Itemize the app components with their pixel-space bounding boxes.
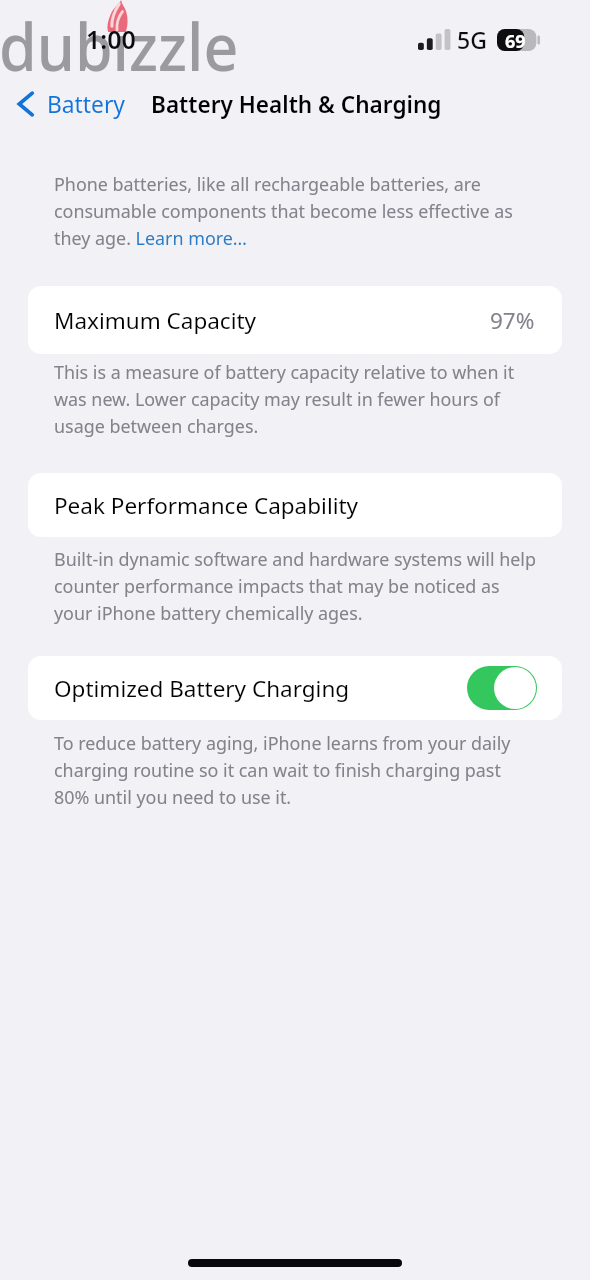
staticText: Battery: [47, 89, 125, 120]
staticText: This is a measure of battery capacity re…: [54, 360, 536, 438]
staticText: 69: [505, 29, 526, 51]
staticText: 5G: [457, 24, 487, 55]
button[interactable]: Optimized Battery Charging: [28, 656, 562, 720]
button[interactable]: Back to Battery: [14, 86, 125, 122]
staticText: 97%: [490, 305, 535, 336]
staticText: Built-in dynamic software and hardware s…: [54, 547, 536, 625]
staticText: Battery Health & Charging: [151, 89, 442, 120]
staticText: Peak Performance Capability: [54, 490, 359, 521]
staticText: To reduce battery aging, iPhone learns f…: [54, 731, 536, 809]
staticText: 1:00: [86, 22, 136, 56]
staticText: Phone batteries, like all rechargeable b…: [54, 172, 536, 250]
staticText: Maximum Capacity: [54, 305, 257, 336]
button[interactable]: Optimized Battery Charging toggle, on: [467, 666, 537, 710]
button[interactable]: Learn more about battery health: [135, 227, 248, 251]
staticText: Optimized Battery Charging: [54, 673, 350, 704]
staticText: dubizzle: [0, 0, 239, 90]
button[interactable]: Peak Performance Capability: [28, 473, 562, 537]
button[interactable]: Maximum Capacity: [28, 286, 562, 354]
